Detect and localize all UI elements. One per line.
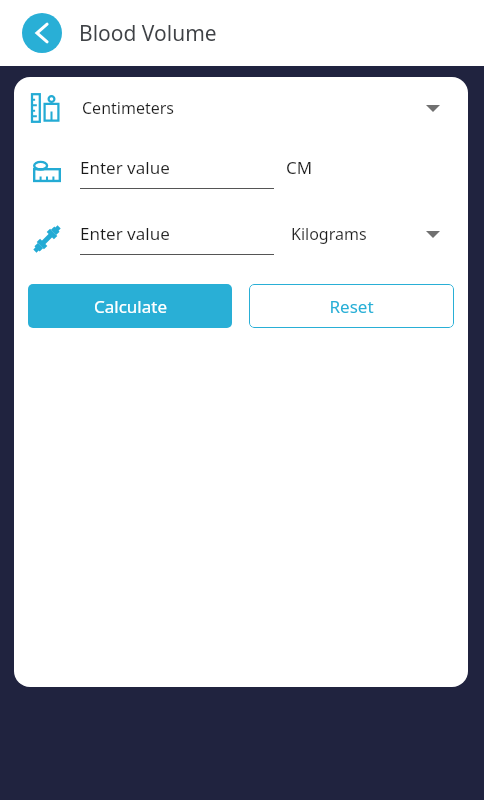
staticText: CM bbox=[286, 156, 313, 179]
button[interactable]: Reset bbox=[249, 284, 454, 328]
button[interactable]: Calculate bbox=[28, 284, 232, 328]
button[interactable]: Kilograms bbox=[274, 223, 468, 245]
button[interactable]: Back bbox=[22, 13, 62, 53]
button[interactable]: Enter value bbox=[80, 222, 274, 255]
staticText: Calculate bbox=[94, 295, 167, 318]
staticText: Blood Volume bbox=[79, 19, 217, 48]
staticText: Reset bbox=[329, 295, 374, 318]
staticText: Kilograms bbox=[291, 223, 367, 245]
staticText: Centimeters bbox=[82, 97, 174, 119]
button[interactable]: Centimeters bbox=[14, 77, 468, 139]
staticText: Enter value bbox=[80, 222, 170, 245]
staticText: Enter value bbox=[80, 156, 170, 179]
button[interactable]: Enter value bbox=[80, 156, 274, 189]
